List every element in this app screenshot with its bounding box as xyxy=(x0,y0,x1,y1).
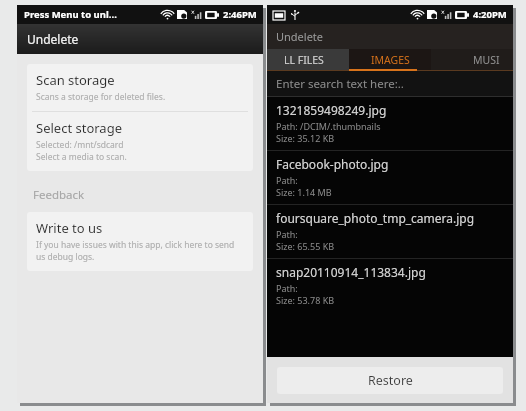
staticText: 2:46PM xyxy=(223,8,257,21)
button[interactable]: Restore xyxy=(277,367,503,394)
staticText: LL FILES xyxy=(284,53,324,67)
staticText: Select storage xyxy=(36,119,122,137)
staticText: 1321859498249.jpg xyxy=(276,102,387,118)
staticText: MUSI xyxy=(473,53,500,67)
button[interactable]: Undelete xyxy=(17,24,263,54)
staticText: us debug logs. xyxy=(36,251,95,263)
button[interactable]: Write to us xyxy=(27,212,253,271)
staticText: Facebook-photo.jpg xyxy=(276,156,389,172)
staticText: Undelete xyxy=(27,31,79,47)
button[interactable]: Facebook-photo.jpg xyxy=(267,151,513,204)
staticText: Feedback xyxy=(33,187,85,203)
staticText: Size: 1.14 MB xyxy=(276,186,332,198)
staticText: Restore xyxy=(368,372,413,389)
button[interactable]: 1321859498249.jpg xyxy=(267,97,513,150)
staticText: Enter search text here:.. xyxy=(276,76,404,92)
staticText: Path: xyxy=(276,174,298,186)
staticText: snap20110914_113834.jpg xyxy=(276,264,426,280)
staticText: IMAGES xyxy=(371,53,410,67)
staticText: foursquare_photo_tmp_camera.jpg xyxy=(276,210,475,226)
staticText: Size: 35.12 KB xyxy=(276,132,335,144)
staticText: Select a media to scan. xyxy=(36,151,127,163)
staticText: Scans a storage for deleted files. xyxy=(36,91,166,103)
button[interactable]: foursquare_photo_tmp_camera.jpg xyxy=(267,205,513,258)
staticText: Undelete xyxy=(276,29,324,44)
button[interactable]: Undelete xyxy=(267,24,513,49)
staticText: Path: /DCIM/.thumbnails xyxy=(276,120,381,132)
button[interactable]: Select storage xyxy=(27,112,253,171)
button[interactable]: Enter search text here:.. xyxy=(267,71,513,97)
button[interactable]: snap20110914_113834.jpg xyxy=(267,259,513,312)
button[interactable]: Scan storage xyxy=(27,64,253,111)
staticText: Scan storage xyxy=(36,71,115,89)
staticText: 4:20PM xyxy=(473,8,507,21)
staticText: Press Menu to unl... xyxy=(24,8,117,21)
staticText: If you have issues with this app, click … xyxy=(36,239,235,251)
button[interactable]: LL FILES xyxy=(267,49,349,71)
staticText: Write to us xyxy=(36,219,103,237)
staticText: Size: 65.55 KB xyxy=(276,240,335,252)
button[interactable]: MUSI xyxy=(431,49,513,71)
button[interactable]: IMAGES xyxy=(349,49,431,71)
staticText: Path: xyxy=(276,282,298,294)
staticText: Size: 53.78 KB xyxy=(276,294,335,306)
staticText: Selected: /mnt/sdcard xyxy=(36,139,124,151)
staticText: Path: xyxy=(276,228,298,240)
